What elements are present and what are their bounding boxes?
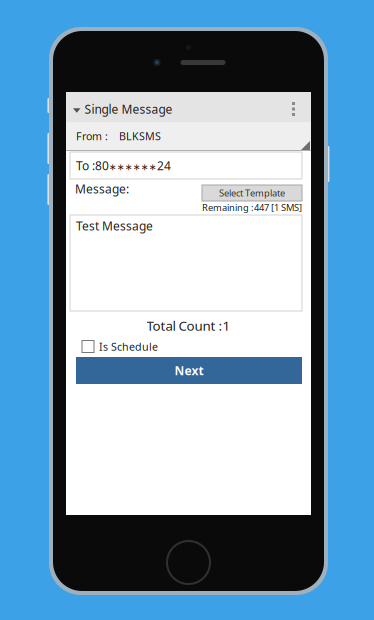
staticText: Test Message (76, 218, 153, 234)
button[interactable]: Is Schedule (82, 340, 182, 353)
staticText: Next (174, 362, 203, 379)
staticText: Total Count :1 (146, 317, 230, 334)
staticText: Message: (75, 181, 129, 197)
staticText: To :80∗∗∗∗∗∗24 (76, 157, 171, 173)
button[interactable]: From : (66, 122, 311, 150)
staticText: Select Template (219, 187, 285, 199)
staticText: Is Schedule (99, 339, 158, 354)
button[interactable]: Select Template (202, 185, 302, 201)
button[interactable]: Single Message (66, 92, 311, 126)
staticText: From : (76, 129, 108, 143)
staticText: BLKSMS (119, 129, 161, 143)
staticText: Remaining :447 [1 SMS] (202, 201, 302, 214)
staticText: Single Message (84, 101, 172, 117)
button[interactable]: Next (76, 357, 302, 384)
